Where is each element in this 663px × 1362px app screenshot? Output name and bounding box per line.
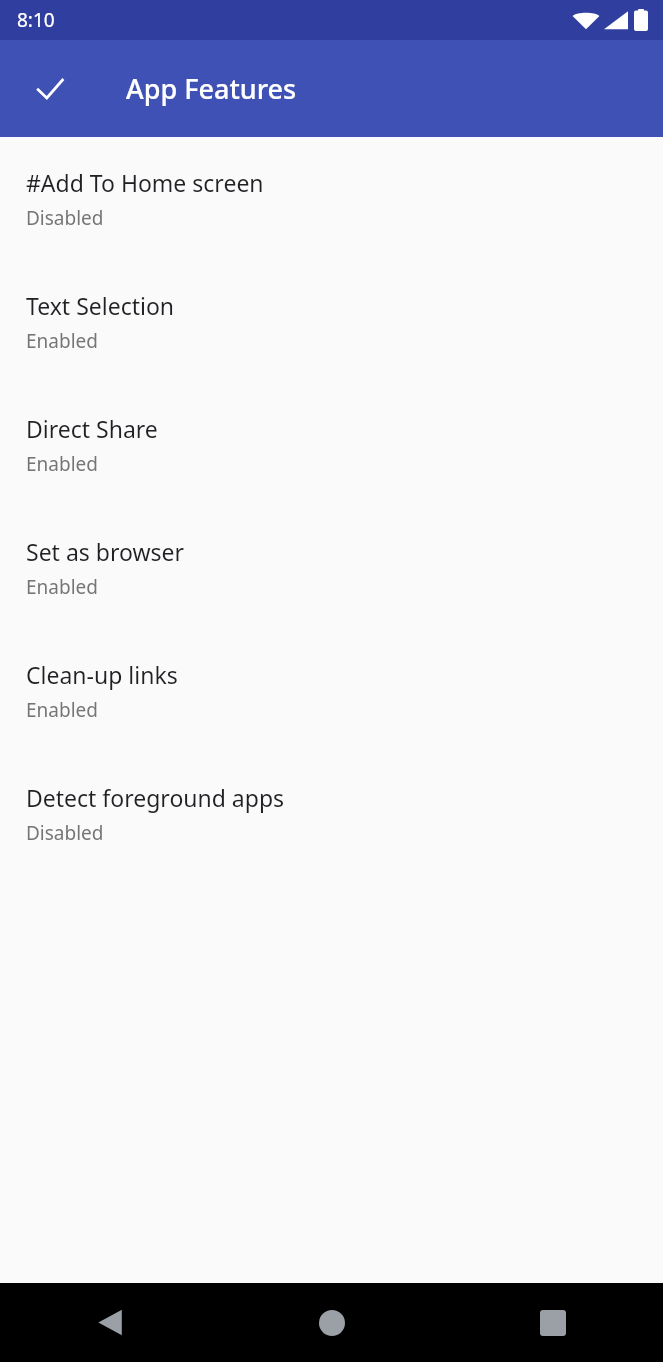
staticText: Enabled xyxy=(26,328,98,354)
staticText: 8:10 xyxy=(17,7,55,33)
button[interactable]: #Add To Home screen xyxy=(0,157,663,280)
staticText: App Features xyxy=(126,70,297,107)
staticText: Enabled xyxy=(26,451,98,477)
button[interactable]: Clean-up links xyxy=(0,649,663,772)
staticText: Disabled xyxy=(26,205,104,231)
staticText: #Add To Home screen xyxy=(26,167,264,198)
staticText: Disabled xyxy=(26,820,104,846)
staticText: Enabled xyxy=(26,574,98,600)
staticText: Detect foreground apps xyxy=(26,782,285,813)
staticText: Text Selection xyxy=(26,290,175,321)
staticText: Clean-up links xyxy=(26,659,178,690)
button[interactable]: Text Selection xyxy=(0,280,663,403)
staticText: Enabled xyxy=(26,697,98,723)
button[interactable]: Detect foreground apps xyxy=(0,772,663,895)
button[interactable]: Home xyxy=(221,1283,442,1362)
staticText: Direct Share xyxy=(26,413,158,444)
staticText: Set as browser xyxy=(26,536,184,567)
button[interactable]: Direct Share xyxy=(0,403,663,526)
button[interactable]: Recent apps xyxy=(442,1283,663,1362)
button[interactable]: Confirm xyxy=(20,59,80,119)
button[interactable]: Set as browser xyxy=(0,526,663,649)
button[interactable]: Back xyxy=(0,1283,221,1362)
